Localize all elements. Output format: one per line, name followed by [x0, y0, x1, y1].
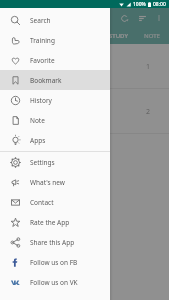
staticText: Rate the App	[30, 218, 70, 227]
staticText: Contact	[30, 198, 54, 207]
staticText: Bookmark	[30, 76, 62, 85]
button[interactable]: Search	[0, 10, 110, 30]
staticText: What's new	[30, 178, 65, 187]
staticText: Settings	[30, 158, 55, 167]
staticText: STUDY	[109, 32, 128, 40]
button[interactable]: What's new	[0, 172, 110, 192]
button[interactable]: STUDY	[101, 28, 135, 44]
staticText: Search	[30, 16, 51, 25]
button[interactable]: More options	[151, 10, 167, 26]
staticText: NOTE	[144, 32, 160, 40]
staticText: History	[30, 96, 52, 105]
staticText: 2	[146, 107, 151, 117]
staticText: 08:00	[153, 1, 166, 8]
button[interactable]: Sort	[133, 9, 151, 27]
button[interactable]: NOTE	[135, 28, 169, 44]
button[interactable]: Follow us on VK	[0, 272, 110, 292]
staticText: Follow us on VK	[30, 278, 78, 287]
staticText: Note	[30, 116, 45, 125]
button[interactable]: 2	[0, 89, 169, 134]
staticText: Training	[30, 36, 55, 45]
button[interactable]: Rate the App	[0, 212, 110, 232]
button[interactable]: Settings	[0, 152, 110, 172]
button[interactable]: Apps	[0, 130, 110, 150]
button[interactable]: Follow us on FB	[0, 252, 110, 272]
button[interactable]: Note	[0, 110, 110, 130]
staticText: 1	[146, 62, 151, 72]
staticText: 100%	[133, 1, 146, 8]
staticText: Apps	[30, 136, 46, 145]
button[interactable]: Refresh	[115, 9, 133, 27]
staticText: Share this App	[30, 238, 75, 247]
button[interactable]: History	[0, 90, 110, 110]
button[interactable]: Training	[0, 30, 110, 50]
staticText: Favorite	[30, 56, 55, 65]
button[interactable]: 1	[0, 44, 169, 89]
button[interactable]: Favorite	[0, 50, 110, 70]
button[interactable]: Contact	[0, 192, 110, 212]
staticText: Follow us on FB	[30, 258, 78, 267]
button[interactable]: Bookmark	[0, 70, 110, 90]
button[interactable]: Share this App	[0, 232, 110, 252]
